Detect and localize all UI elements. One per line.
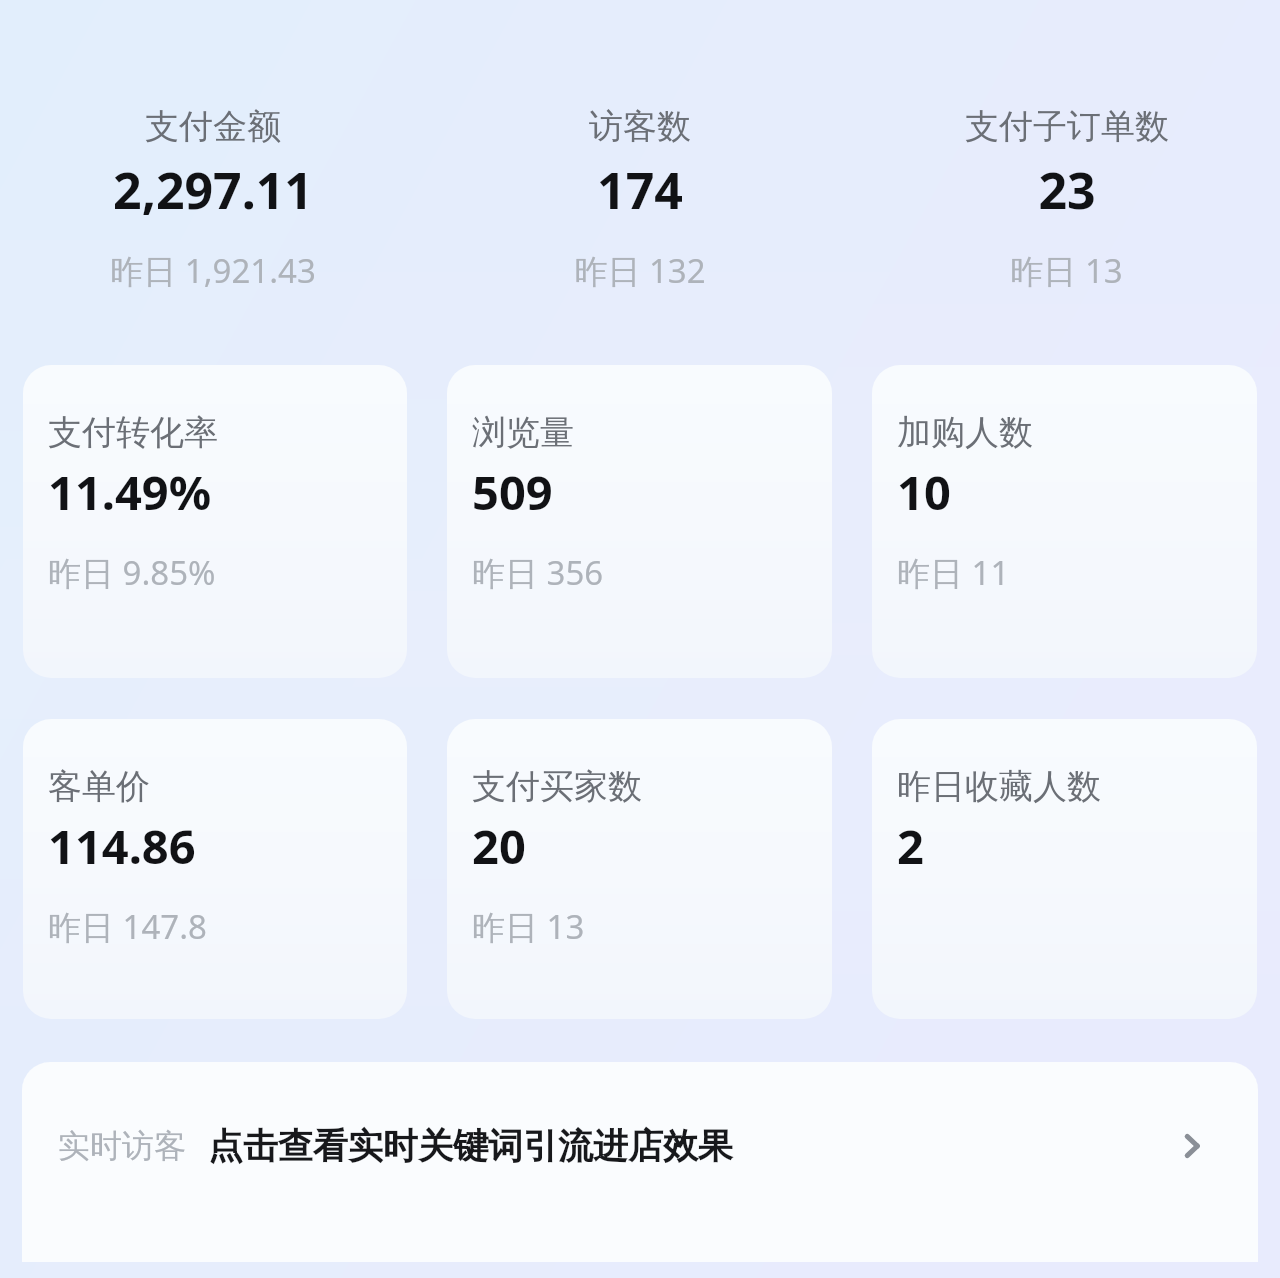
button[interactable]: 支付买家数 [447,719,832,1019]
staticText: 昨日收藏人数 [897,765,1101,808]
button[interactable]: 昨日收藏人数 [872,719,1257,1019]
staticText: 支付转化率 [48,411,218,454]
staticText: 客单价 [48,765,150,808]
staticText: 昨日 9.85% [48,550,216,595]
button[interactable]: 客单价 [23,719,407,1019]
other: 查看实时访客 [1170,1124,1214,1168]
staticText: 23 [1038,156,1096,224]
staticText: 昨日 147.8 [48,904,207,949]
button[interactable]: 实时访客 [22,1062,1258,1262]
staticText: 支付子订单数 [965,105,1169,148]
staticText: 访客数 [589,105,691,148]
button[interactable]: 加购人数 [872,365,1257,678]
button[interactable]: 访客数 [426,105,853,293]
staticText: 昨日 13 [1010,248,1123,293]
button[interactable]: 支付子订单数 [853,105,1280,293]
staticText: 20 [472,814,526,878]
staticText: 昨日 132 [574,248,706,293]
staticText: 昨日 356 [472,550,604,595]
staticText: 509 [472,460,553,524]
staticText: 2,297.11 [113,156,313,224]
staticText: 点击查看实时关键词引流进店效果 [208,1124,733,1168]
staticText: 支付买家数 [472,765,642,808]
staticText: 昨日 13 [472,904,585,949]
staticText: 11.49% [48,460,212,524]
staticText: 昨日 1,921.43 [110,248,316,293]
staticText: 加购人数 [897,411,1033,454]
staticText: 2 [897,814,924,878]
staticText: 支付金额 [145,105,281,148]
staticText: 10 [897,460,951,524]
button[interactable]: 支付转化率 [23,365,407,678]
staticText: 浏览量 [472,411,574,454]
button[interactable]: 浏览量 [447,365,832,678]
staticText: 实时访客 [58,1126,186,1166]
staticText: 昨日 11 [897,550,1010,595]
staticText: 174 [597,156,683,224]
staticText: 114.86 [48,814,196,878]
button[interactable]: 支付金额 [0,105,426,293]
